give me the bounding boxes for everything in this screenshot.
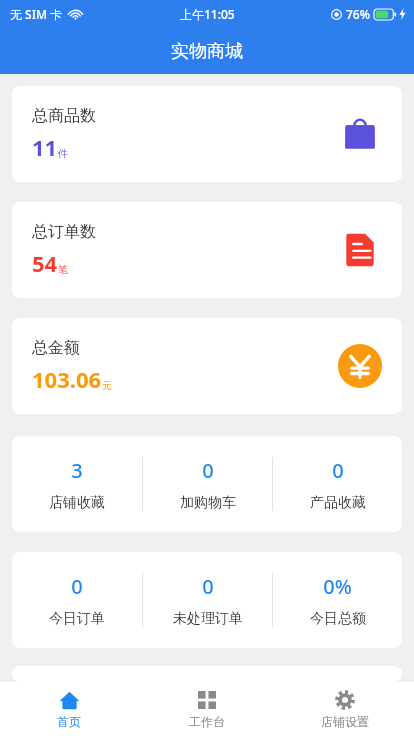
- staticText: 0: [202, 457, 214, 484]
- button[interactable]: Shop settings: [276, 682, 414, 736]
- staticText: 无 SIM 卡: [10, 6, 63, 22]
- other: Total amount: [338, 344, 382, 388]
- button[interactable]: 总订单数: [12, 202, 402, 298]
- staticText: 总金额: [32, 338, 80, 358]
- staticText: 加购物车: [180, 494, 236, 512]
- staticText: 103.06: [32, 364, 102, 394]
- button[interactable]: 0: [143, 552, 272, 648]
- staticText: 总订单数: [32, 222, 96, 242]
- button[interactable]: 3: [12, 436, 142, 532]
- staticText: 总商品数: [32, 106, 96, 126]
- other: Shop settings: [335, 690, 355, 710]
- staticText: 店铺设置: [321, 714, 369, 729]
- button[interactable]: 总金额: [12, 318, 402, 414]
- staticText: 未处理订单: [173, 610, 243, 628]
- button[interactable]: 0: [12, 552, 142, 648]
- staticText: 今日订单: [49, 610, 105, 628]
- button[interactable]: Workbench: [138, 682, 276, 736]
- staticText: 件: [58, 147, 68, 160]
- other: Home: [59, 690, 80, 711]
- other: Total products: [341, 115, 379, 153]
- staticText: 工作台: [189, 714, 225, 729]
- staticText: 11: [32, 132, 58, 162]
- button[interactable]: 0: [273, 436, 402, 532]
- other: Total orders: [342, 232, 378, 268]
- staticText: 元: [102, 379, 112, 392]
- staticText: 3: [71, 457, 83, 484]
- staticText: 0: [202, 573, 214, 600]
- staticText: 产品收藏: [310, 494, 366, 512]
- staticText: 76%: [346, 6, 370, 22]
- staticText: 0: [332, 457, 344, 484]
- staticText: 上午11:05: [180, 6, 235, 22]
- staticText: 笔: [58, 263, 68, 276]
- staticText: 54: [32, 248, 58, 278]
- staticText: 首页: [57, 714, 81, 729]
- button[interactable]: Home: [0, 682, 138, 736]
- staticText: 实物商城: [171, 40, 243, 63]
- button[interactable]: 0: [143, 436, 272, 532]
- staticText: 店铺收藏: [49, 494, 105, 512]
- staticText: 0: [71, 573, 83, 600]
- staticText: 0%: [323, 573, 352, 600]
- staticText: 今日总额: [310, 610, 366, 628]
- button[interactable]: 0%: [273, 552, 402, 648]
- button[interactable]: 总商品数: [12, 86, 402, 182]
- other: Workbench: [198, 691, 216, 709]
